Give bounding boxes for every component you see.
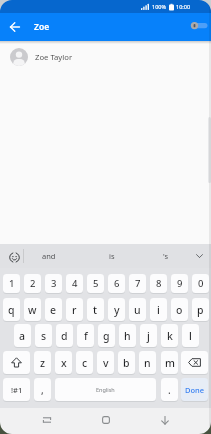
button[interactable]: b [118,351,135,374]
staticText: x [61,356,67,370]
button[interactable]: j [140,324,157,347]
staticText: Zoe Taylor [35,52,73,62]
staticText: d [61,329,68,343]
staticText: k [167,329,173,343]
staticText: w [28,303,37,317]
staticText: m [165,356,175,370]
button[interactable]: and [28,244,70,268]
button[interactable]: is [91,244,133,268]
button[interactable]: g [98,324,115,347]
staticText: g [103,329,110,343]
staticText: f [84,329,88,343]
button[interactable]: o [171,298,188,321]
button[interactable]: u [129,298,146,321]
staticText: q [8,303,15,317]
button[interactable] [190,247,208,265]
button[interactable]: q [3,298,20,321]
staticText: t [93,303,98,317]
staticText: Zoe [34,21,50,33]
staticText: 1 [9,277,15,290]
staticText: 5 [93,277,99,290]
staticText: p [197,303,204,317]
button[interactable]: 6 [108,274,125,293]
staticText: 3 [51,277,57,290]
staticText: o [176,303,183,317]
button[interactable]: 2 [24,274,41,293]
button[interactable]: s [35,324,52,347]
button[interactable]: m [161,351,178,374]
button[interactable]: t [87,298,104,321]
staticText: 4 [72,277,78,290]
button[interactable]: c [76,351,93,374]
staticText: c [82,356,88,370]
staticText: !#1 [11,385,23,395]
button[interactable] [4,248,24,266]
button[interactable]: 3 [45,274,62,293]
staticText: a [19,329,26,343]
button[interactable]: 8 [150,274,167,293]
button[interactable] [181,351,208,374]
staticText: r [72,303,77,317]
button[interactable]: w [24,298,41,321]
button[interactable]: f [77,324,94,347]
staticText: . [168,383,171,397]
staticText: e [50,303,57,317]
button[interactable]: v [97,351,114,374]
staticText: v [103,356,109,370]
button[interactable] [96,410,116,430]
button[interactable]: e [45,298,62,321]
button[interactable]: !#1 [3,378,30,401]
button[interactable]: p [192,298,209,321]
button[interactable]: r [66,298,83,321]
button[interactable]: Done [181,378,208,401]
staticText: 7 [135,277,141,290]
staticText: z [40,356,46,370]
staticText: b [123,356,130,370]
button[interactable]: 5 [87,274,104,293]
button[interactable]: n [139,351,156,374]
staticText: 6 [114,277,120,290]
button[interactable]: 1 [3,274,20,293]
staticText: and [42,251,56,261]
button[interactable]: d [56,324,73,347]
button[interactable]: x [55,351,72,374]
staticText: l [189,329,192,343]
button[interactable]: 0 [192,274,209,293]
button[interactable]: 's [145,244,187,268]
staticText: s [41,329,47,343]
staticText: 0 [198,277,204,290]
staticText: u [134,303,141,317]
staticText: Done [185,385,205,395]
button[interactable]: 9 [171,274,188,293]
staticText: h [124,329,131,343]
staticText: is [109,251,115,261]
button[interactable] [3,351,30,374]
button[interactable]: a [14,324,31,347]
button[interactable]: 7 [129,274,146,293]
staticText: 2 [30,277,36,290]
button[interactable]: i [150,298,167,321]
button[interactable] [37,410,57,430]
button[interactable]: h [119,324,136,347]
button[interactable]: , [34,378,51,401]
staticText: y [114,303,120,317]
button[interactable]: k [161,324,178,347]
button[interactable]: Zoe Taylor [0,44,211,69]
staticText: 8 [156,277,162,290]
button[interactable] [155,410,175,430]
staticText: 100% [152,3,167,10]
button[interactable]: 4 [66,274,83,293]
staticText: 9 [177,277,183,290]
staticText: 's [163,251,169,261]
button[interactable]: . [161,378,178,401]
staticText: n [144,356,151,370]
button[interactable]: l [182,324,199,347]
button[interactable] [188,19,210,32]
button[interactable]: y [108,298,125,321]
button[interactable] [6,18,24,36]
staticText: i [157,303,160,317]
button[interactable]: z [34,351,51,374]
staticText: 10:00 [176,3,191,10]
button[interactable]: English [55,378,156,401]
staticText: English [96,386,115,393]
